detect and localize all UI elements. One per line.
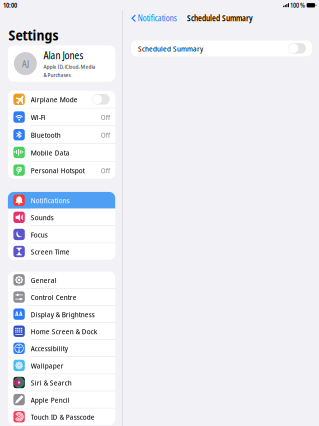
button[interactable]: Notifications [8,192,115,208]
button[interactable]: Personal Hotspot [8,161,115,179]
button[interactable]: Notifications [129,9,179,27]
button[interactable]: Bluetooth [8,126,115,143]
staticText: Mobile Data [31,147,70,158]
staticText: Notifications [31,195,70,205]
staticText: Personal Hotspot [31,165,85,175]
staticText: 10:00 [3,1,17,10]
button[interactable]: Apple Pencil [8,391,115,408]
staticText: Sounds [31,212,54,222]
staticText: Display & Brightness [31,309,95,319]
staticText: Bluetooth [31,129,61,140]
staticText: General [31,275,57,285]
staticText: Alan Jones [43,48,83,62]
staticText: Settings [8,25,58,44]
button[interactable]: Siri & Search [8,374,115,391]
button[interactable]: Focus [8,226,115,243]
button[interactable]: Control Centre [8,289,115,305]
staticText: Notifications [138,13,177,23]
staticText: 100 % [289,1,305,10]
button[interactable]: General [8,272,115,288]
button[interactable]: Accessibility [8,340,115,357]
button[interactable]: Wallpaper [8,357,115,374]
staticText: & Purchases [43,71,70,79]
staticText: Wallpaper [31,360,64,371]
button[interactable]: Wi-Fi [8,108,115,126]
staticText: Airplane Mode [31,94,78,104]
button[interactable]: Airplane Mode [8,91,115,108]
staticText: Control Centre [31,292,77,302]
staticText: Home Screen & Dock [31,326,97,336]
staticText: Scheduled Summary [138,43,203,54]
staticText: Touch ID & Passcode [31,411,95,422]
staticText: Scheduled Summary [187,13,253,23]
button[interactable]: Mobile Data [8,144,115,161]
button[interactable]: Sounds [8,209,115,226]
button[interactable]: Touch ID & Passcode [8,408,115,425]
staticText: Siri & Search [31,377,72,388]
button[interactable]: Home Screen & Dock [8,323,115,339]
staticText: Focus [31,229,48,240]
staticText: Apple Pencil [31,394,70,405]
staticText: Screen Time [31,246,70,257]
button[interactable]: Screen Time [8,243,115,260]
staticText: Wi-Fi [31,112,46,122]
button[interactable]: Scheduled Summary [131,40,312,56]
button[interactable]: AA [8,306,115,322]
staticText: Accessibility [31,343,68,353]
staticText: AA [15,310,23,318]
staticText: AJ [22,57,29,70]
staticText: Off [101,112,110,122]
button[interactable]: AJ [8,45,115,82]
staticText: Off [101,165,110,175]
staticText: Off [101,129,110,140]
staticText: Apple ID, iCloud, Media [43,62,95,70]
